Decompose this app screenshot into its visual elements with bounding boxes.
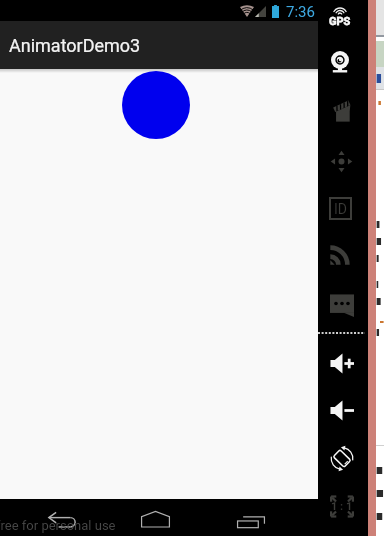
- button[interactable]: GPS: [327, 2, 353, 28]
- staticText: free for personal use: [0, 518, 116, 533]
- button[interactable]: AnimatorDemo3: [0, 21, 318, 69]
- staticText: GPS: [329, 15, 351, 28]
- button[interactable]: Back: [38, 506, 86, 529]
- staticText: ID: [334, 201, 347, 217]
- button[interactable]: Cellular: [329, 244, 351, 266]
- button[interactable]: Recents: [228, 506, 276, 529]
- staticText: 7:36: [286, 3, 315, 21]
- button[interactable]: Record screen: [331, 100, 353, 123]
- button[interactable]: D-pad: [330, 150, 353, 173]
- button[interactable]: Emulator control: [328, 51, 352, 75]
- button[interactable]: Messages: [330, 293, 354, 317]
- button[interactable]: Phone ID: [329, 197, 352, 220]
- button[interactable]: Rotate: [330, 446, 354, 471]
- staticText: AnimatorDemo3: [9, 35, 141, 56]
- button[interactable]: Volume up: [330, 353, 354, 374]
- button[interactable]: Volume down: [330, 400, 354, 421]
- button[interactable]: Zoom 1:1: [329, 494, 355, 519]
- button[interactable]: Home: [132, 506, 180, 529]
- staticText: 1 : 1: [331, 500, 353, 513]
